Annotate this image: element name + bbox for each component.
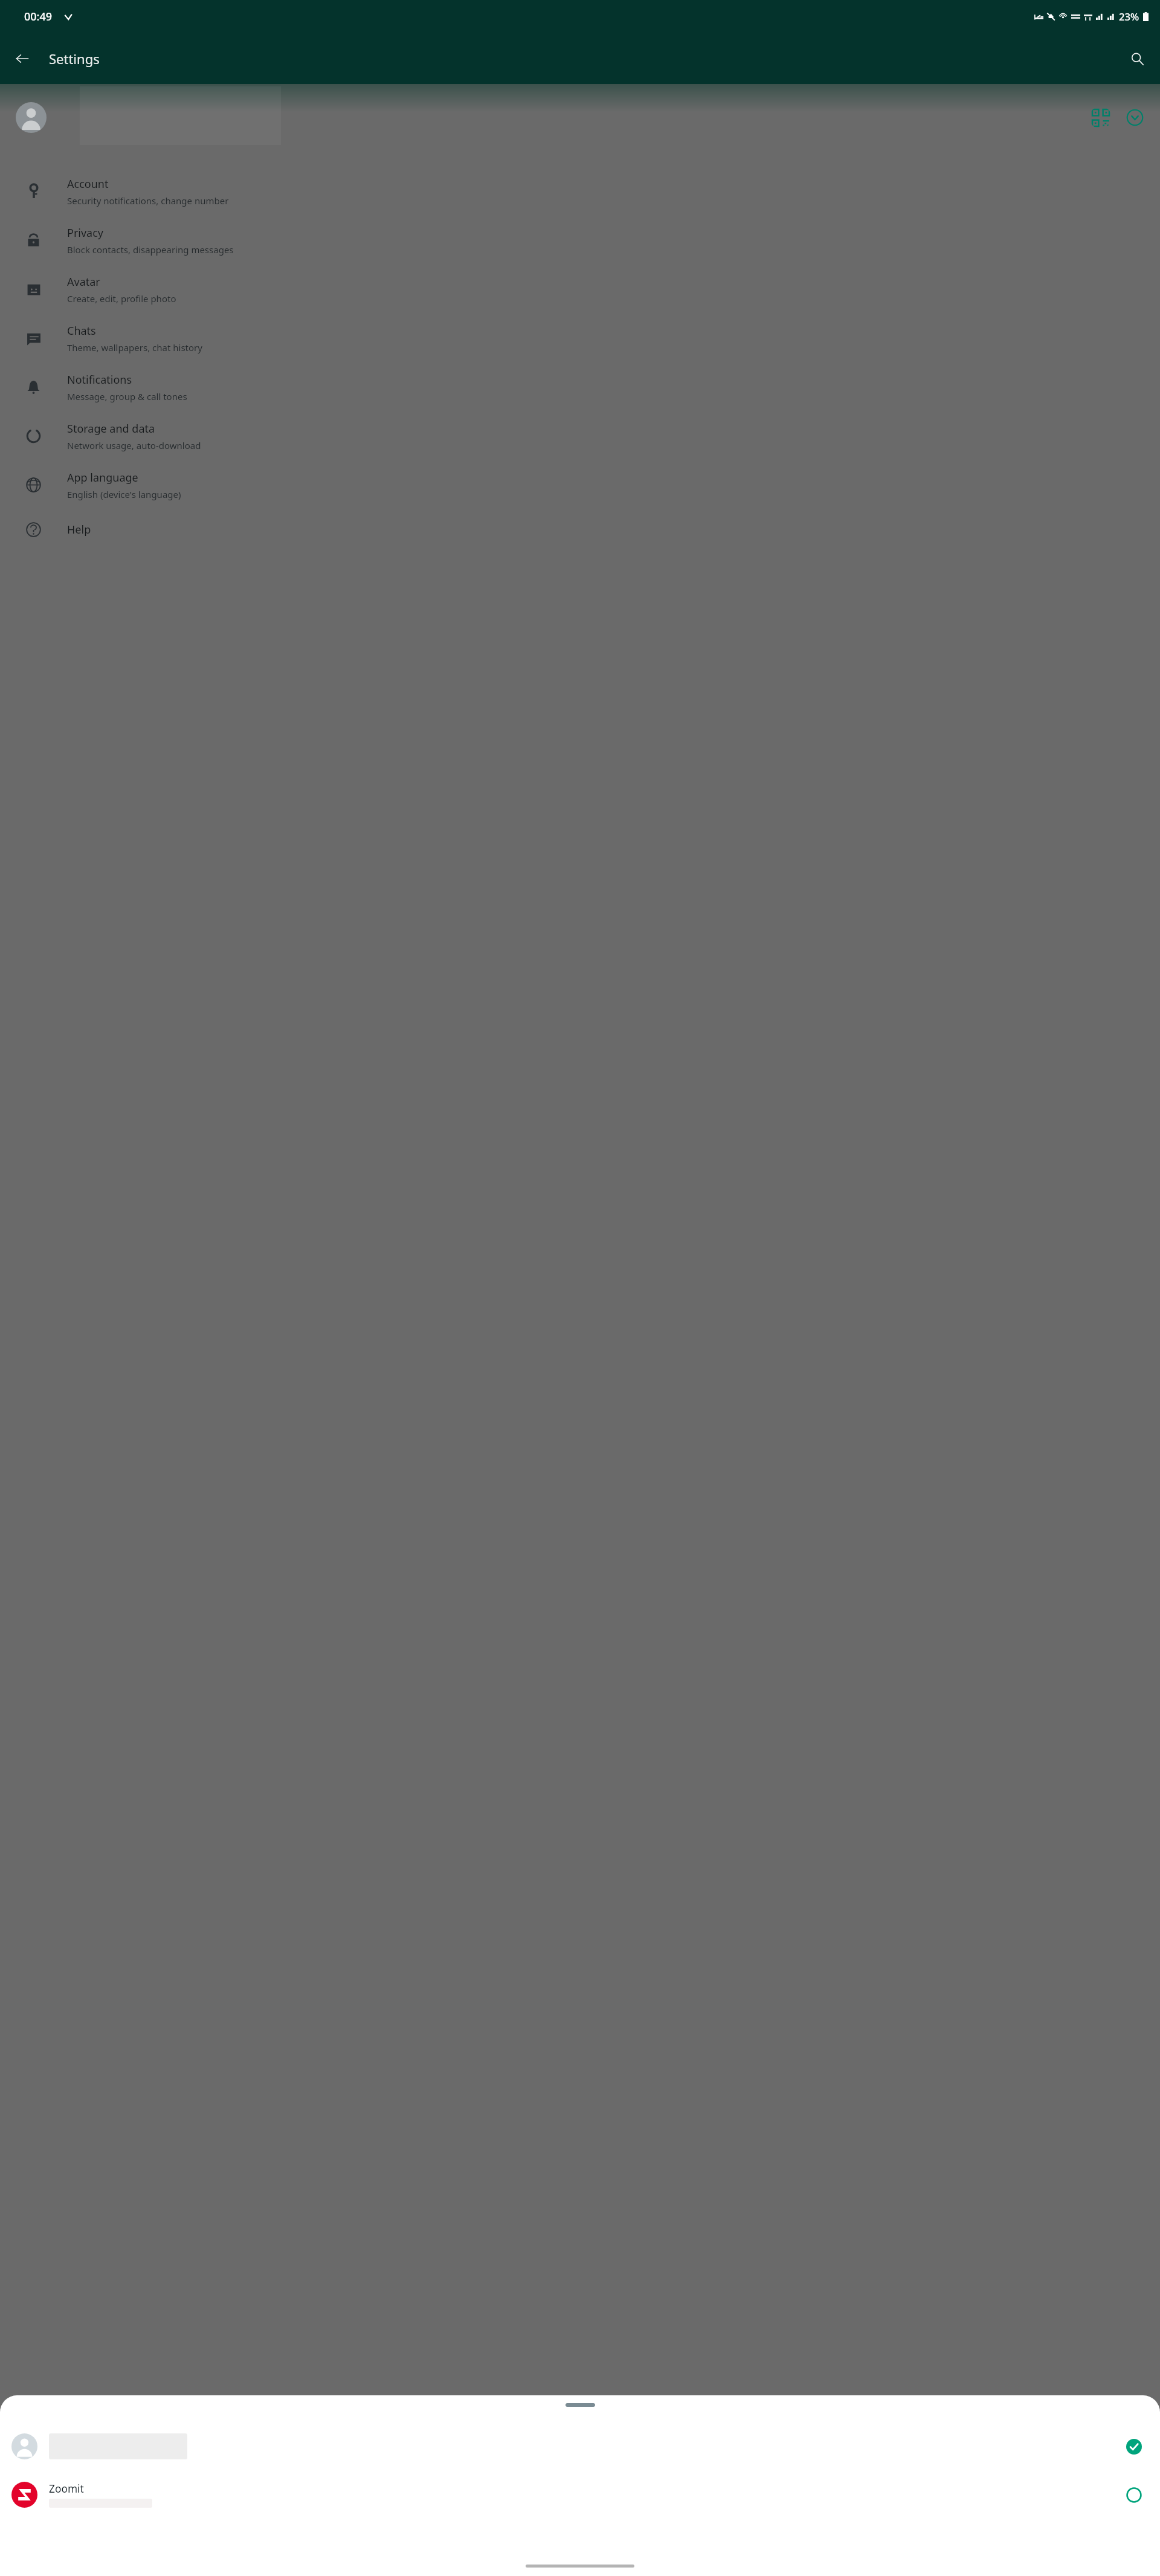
button[interactable]: Select account	[1123, 2484, 1145, 2506]
button[interactable]: QR code	[0, 84, 1160, 150]
staticText: Chats	[67, 323, 96, 338]
staticText: Notifications	[67, 372, 132, 387]
staticText: Privacy	[67, 225, 104, 240]
button[interactable]: Help	[0, 509, 1160, 550]
staticText: 00:49	[24, 9, 53, 24]
button[interactable]: Selected account	[1123, 2435, 1145, 2458]
button[interactable]: Zoomit	[0, 2479, 1160, 2510]
button[interactable]: Selected account	[0, 2431, 1160, 2461]
button[interactable]: Avatar	[0, 265, 1160, 314]
button[interactable]: Storage and data	[0, 412, 1160, 460]
staticText: Zoomit	[49, 2481, 84, 2496]
staticText: Help	[67, 522, 91, 537]
button[interactable]: Back	[10, 46, 35, 71]
button[interactable]: Privacy	[0, 216, 1160, 265]
staticText: Theme, wallpapers, chat history	[67, 341, 202, 353]
staticText: Create, edit, profile photo	[67, 292, 176, 305]
staticText: Network usage, auto-download	[67, 439, 201, 451]
staticText: App language	[67, 470, 138, 485]
button[interactable]: Search	[1124, 46, 1150, 71]
staticText: English (device's language)	[67, 488, 181, 500]
staticText: Storage and data	[67, 421, 155, 436]
staticText: Security notifications, change number	[67, 195, 229, 207]
button[interactable]: Account	[0, 167, 1160, 216]
button[interactable]: Expand	[1124, 106, 1146, 129]
staticText: Message, group & call tones	[67, 390, 187, 402]
button[interactable]: Notifications	[0, 363, 1160, 412]
button[interactable]: Chats	[0, 314, 1160, 363]
button[interactable]: App language	[0, 460, 1160, 509]
button[interactable]: QR code	[1089, 106, 1112, 129]
staticText: Settings	[49, 50, 100, 68]
staticText: Block contacts, disappearing messages	[67, 244, 234, 256]
staticText: Account	[67, 176, 109, 192]
staticText: Avatar	[67, 274, 100, 289]
staticText: 23%	[1119, 10, 1139, 24]
